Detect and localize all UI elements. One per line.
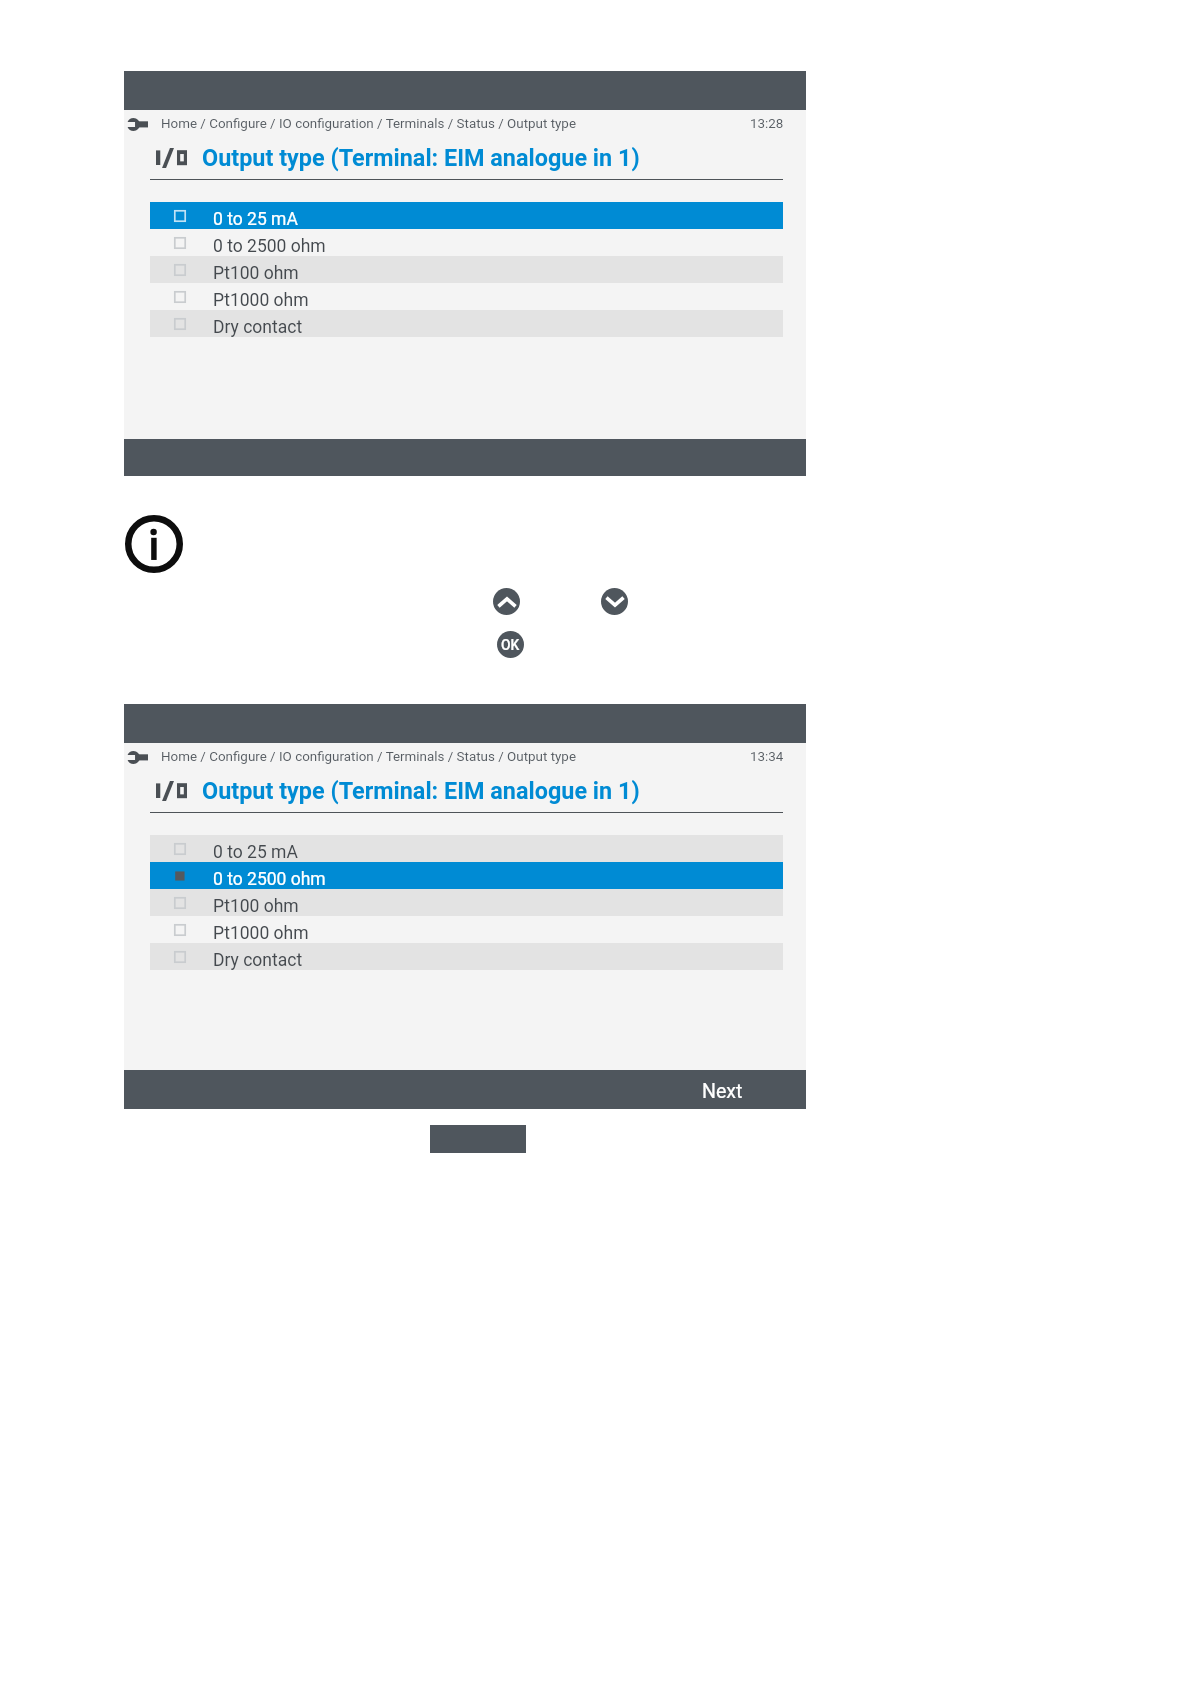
staticText: Pt1000 ohm [213, 923, 309, 944]
button[interactable]: Pt100 ohm [150, 889, 783, 916]
staticText: 0 to 25 mA [213, 842, 298, 863]
staticText: 13:28 [750, 116, 784, 132]
button[interactable]: Pt100 ohm [150, 256, 783, 283]
button[interactable]: 0 to 2500 ohm [150, 862, 783, 889]
button[interactable]: Scroll down [601, 588, 628, 615]
staticText: Next [702, 1080, 743, 1103]
staticText: 13:34 [750, 749, 784, 765]
staticText: 0 to 2500 ohm [213, 869, 326, 890]
button[interactable]: Next [689, 1072, 756, 1111]
staticText: 0 to 25 mA [213, 209, 298, 230]
staticText: Pt100 ohm [213, 263, 299, 284]
staticText: Pt1000 ohm [213, 290, 309, 311]
staticText: Pt100 ohm [213, 896, 299, 917]
staticText: Dry contact [213, 950, 303, 971]
staticText: OK [501, 637, 520, 653]
button[interactable]: Dry contact [150, 310, 783, 337]
button[interactable]: 0 to 2500 ohm [150, 229, 783, 256]
staticText: 0 to 2500 ohm [213, 236, 326, 257]
button[interactable]: Pt1000 ohm [150, 916, 783, 943]
button[interactable]: 0 to 25 mA [150, 202, 783, 229]
staticText: Home / Configure / IO configuration / Te… [161, 749, 576, 765]
button[interactable]: OK [497, 631, 524, 658]
staticText: Output type (Terminal: EIM analogue in 1… [202, 144, 640, 171]
staticText: Home / Configure / IO configuration / Te… [161, 116, 576, 132]
staticText: Dry contact [213, 317, 303, 338]
button[interactable]: 0 to 25 mA [150, 835, 783, 862]
staticText: Output type (Terminal: EIM analogue in 1… [202, 777, 640, 804]
button[interactable]: Scroll up [493, 588, 520, 615]
button[interactable]: Pt1000 ohm [150, 283, 783, 310]
button[interactable]: Dry contact [150, 943, 783, 970]
